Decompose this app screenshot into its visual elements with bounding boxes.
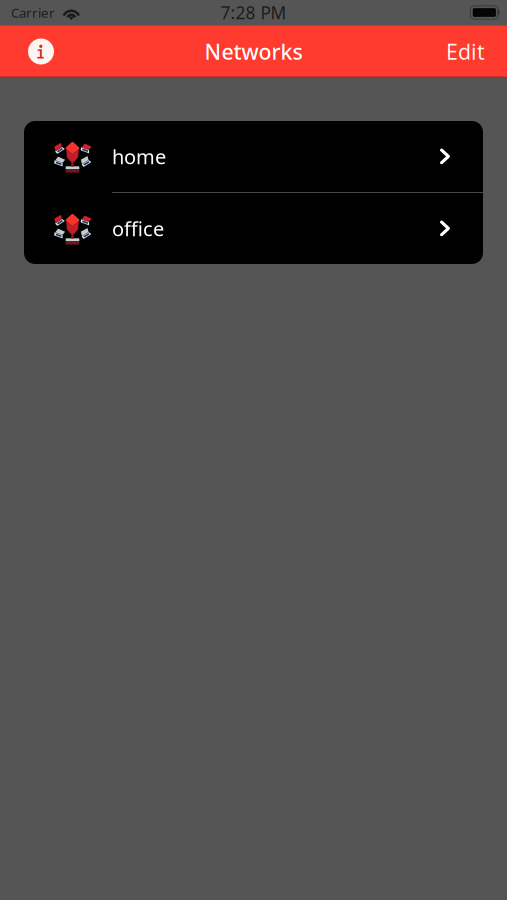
staticText: home — [112, 143, 166, 170]
staticText: Edit — [446, 37, 485, 66]
button[interactable]: office — [24, 193, 483, 264]
button[interactable]: Edit — [436, 29, 495, 73]
button[interactable]: Info — [19, 29, 63, 73]
staticText: 7:28 PM — [220, 1, 286, 24]
button[interactable]: home — [24, 121, 483, 192]
staticText: Carrier — [11, 4, 55, 21]
staticText: Networks — [204, 37, 302, 66]
staticText: office — [112, 215, 164, 242]
